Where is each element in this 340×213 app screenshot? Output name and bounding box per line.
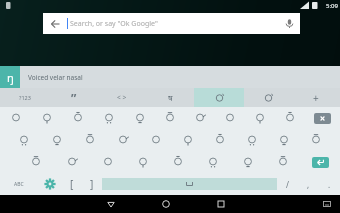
button[interactable] bbox=[185, 107, 215, 129]
button[interactable]: / bbox=[277, 173, 298, 195]
button[interactable] bbox=[0, 107, 31, 129]
button[interactable] bbox=[244, 88, 292, 107]
button[interactable] bbox=[124, 107, 155, 129]
staticText: ŋ bbox=[7, 70, 14, 85]
button[interactable] bbox=[31, 107, 62, 129]
button[interactable] bbox=[245, 107, 275, 129]
staticText: ABC bbox=[14, 181, 24, 188]
button[interactable]: Back bbox=[98, 195, 124, 213]
button[interactable] bbox=[194, 88, 244, 107]
button[interactable] bbox=[7, 129, 40, 151]
staticText: 5:09 bbox=[326, 2, 338, 10]
button[interactable]: ?123 bbox=[0, 88, 50, 107]
staticText: ष bbox=[168, 92, 173, 103]
button[interactable] bbox=[195, 151, 230, 173]
button[interactable] bbox=[230, 151, 265, 173]
staticText: ] bbox=[90, 177, 94, 191]
button[interactable] bbox=[204, 129, 236, 151]
button[interactable]: Backspace bbox=[305, 107, 340, 129]
button[interactable] bbox=[160, 151, 195, 173]
button[interactable] bbox=[300, 129, 332, 151]
staticText: ?123 bbox=[19, 94, 31, 101]
button[interactable]: [ bbox=[62, 173, 82, 195]
button[interactable]: ” bbox=[50, 88, 98, 107]
button[interactable] bbox=[106, 129, 139, 151]
button[interactable]: Recents bbox=[208, 195, 234, 213]
staticText: Search, or say "Ok Google" bbox=[70, 19, 278, 29]
button[interactable] bbox=[62, 107, 93, 129]
button[interactable]: . bbox=[319, 173, 340, 195]
staticText: < > bbox=[117, 93, 127, 102]
button[interactable] bbox=[275, 107, 305, 129]
button[interactable]: + bbox=[292, 88, 340, 107]
button[interactable]: ABC bbox=[0, 173, 37, 195]
button[interactable] bbox=[215, 107, 245, 129]
button[interactable] bbox=[155, 107, 185, 129]
button[interactable] bbox=[73, 129, 106, 151]
staticText: / bbox=[286, 179, 289, 190]
button[interactable] bbox=[236, 129, 268, 151]
staticText: Voiced velar nasal bbox=[28, 73, 83, 82]
button[interactable]: Voice search bbox=[278, 13, 300, 34]
button[interactable]: ] bbox=[82, 173, 102, 195]
button[interactable]: Back bbox=[43, 13, 300, 34]
staticText: [ bbox=[70, 177, 74, 191]
button[interactable]: Home bbox=[153, 195, 179, 213]
button[interactable] bbox=[54, 151, 90, 173]
staticText: , bbox=[307, 179, 310, 190]
button[interactable] bbox=[265, 151, 300, 173]
staticText: ” bbox=[71, 90, 77, 106]
staticText: + bbox=[313, 91, 319, 105]
button[interactable] bbox=[172, 129, 204, 151]
button[interactable]: Space bbox=[102, 178, 277, 190]
button[interactable] bbox=[18, 151, 54, 173]
button[interactable] bbox=[268, 129, 300, 151]
button[interactable] bbox=[125, 151, 160, 173]
button[interactable]: Change keyboard bbox=[314, 195, 340, 213]
button[interactable]: Back bbox=[43, 13, 67, 34]
staticText: . bbox=[328, 179, 331, 190]
button[interactable]: ष bbox=[146, 88, 194, 107]
button[interactable] bbox=[40, 129, 73, 151]
button[interactable] bbox=[93, 107, 124, 129]
button[interactable]: Voiced velar nasal bbox=[28, 66, 340, 88]
button[interactable]: Settings bbox=[37, 173, 62, 195]
button[interactable] bbox=[90, 151, 125, 173]
button[interactable]: Enter bbox=[300, 151, 340, 173]
button[interactable]: ŋ bbox=[0, 66, 20, 88]
button[interactable]: < > bbox=[98, 88, 146, 107]
button[interactable] bbox=[139, 129, 172, 151]
button[interactable]: , bbox=[298, 173, 319, 195]
